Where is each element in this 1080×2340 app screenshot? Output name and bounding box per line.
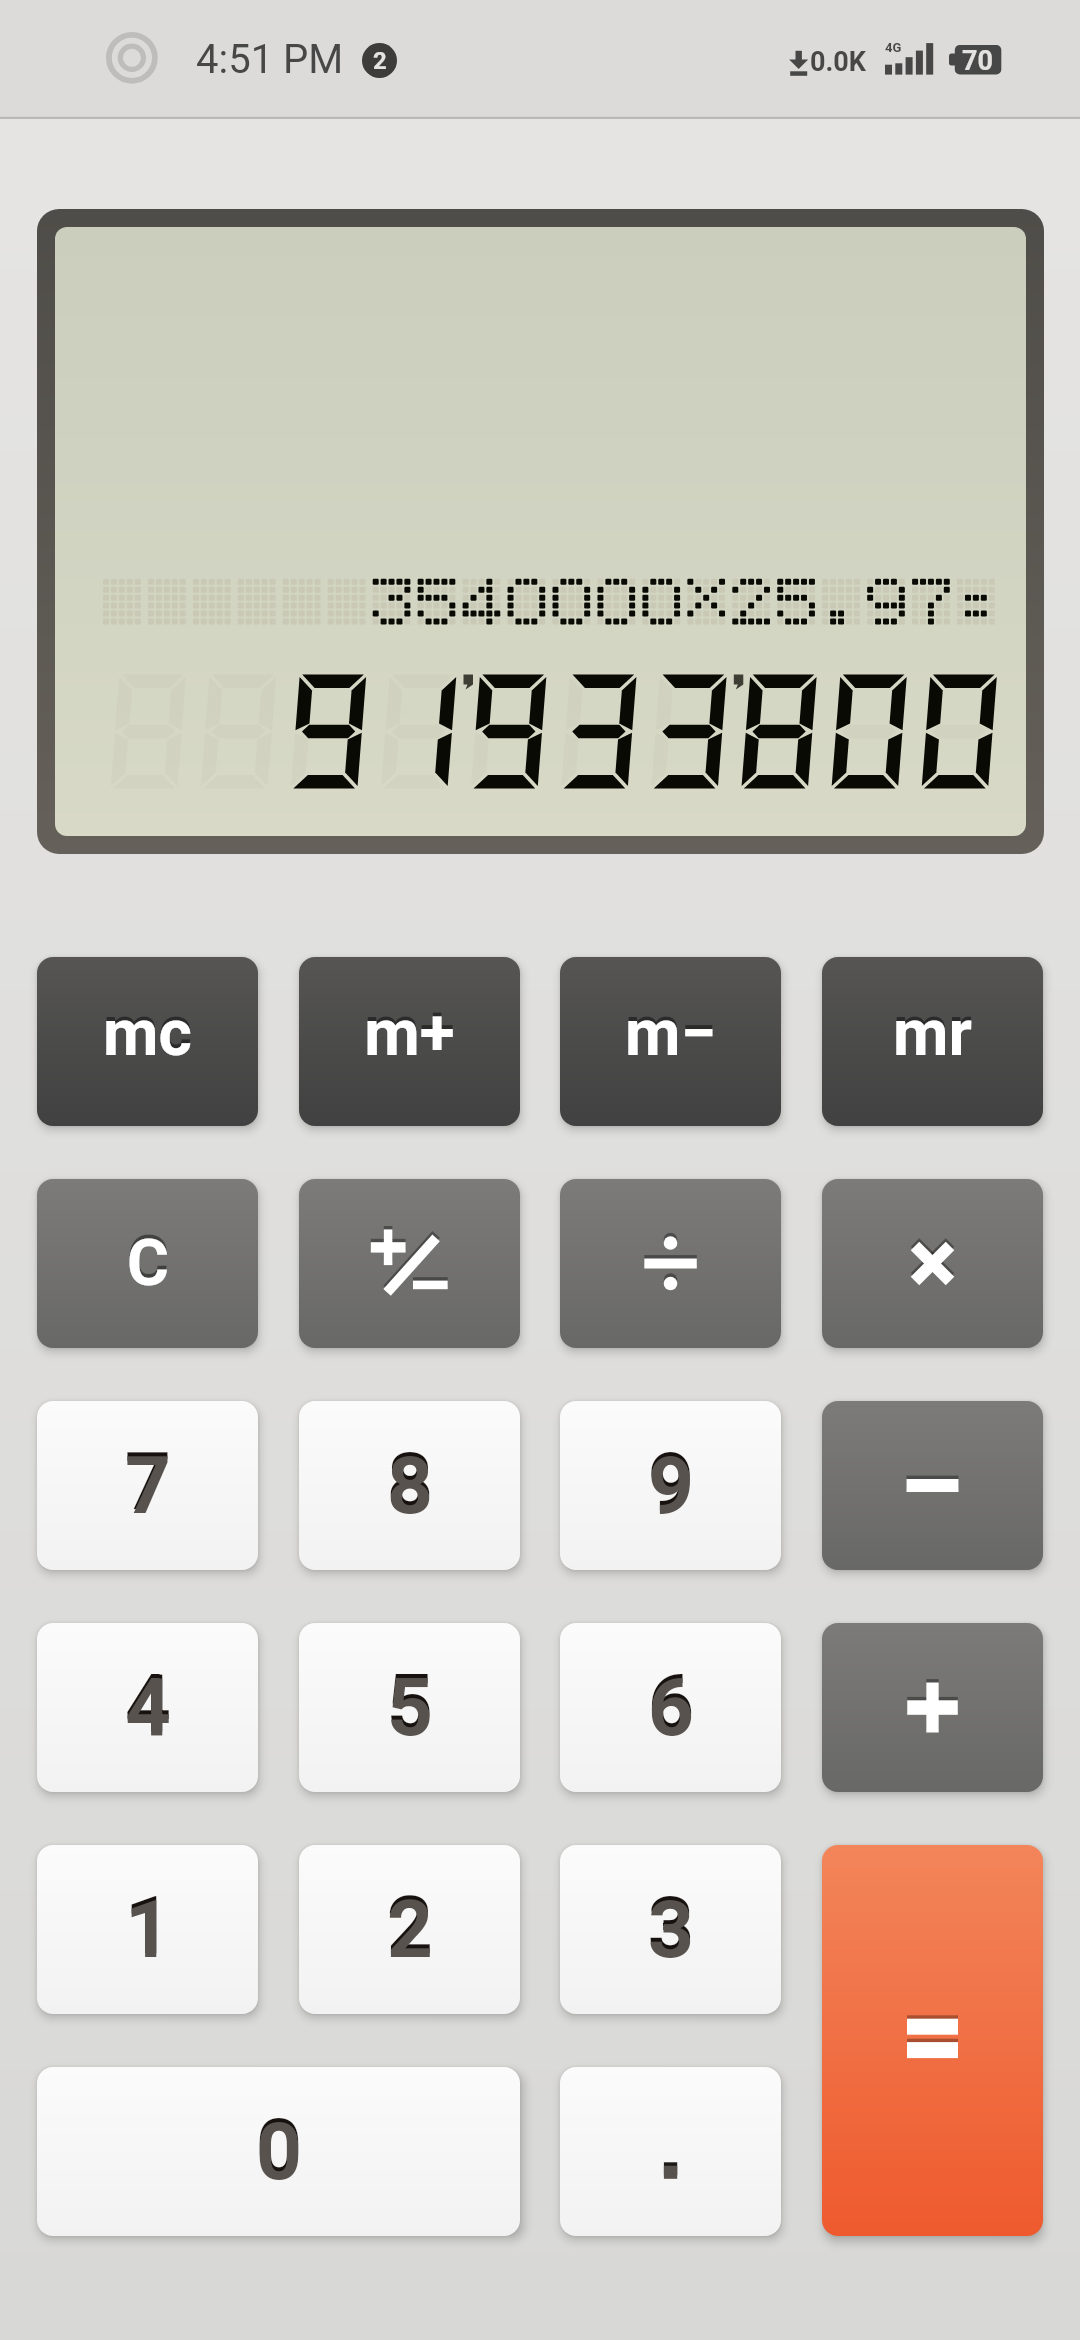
- staticText: 9: [648, 1435, 694, 1529]
- staticText: 2: [373, 47, 387, 75]
- staticText: 0: [256, 2105, 302, 2199]
- staticText: mr: [893, 992, 972, 1067]
- staticText: 0.0K: [810, 46, 866, 78]
- staticText: 8: [387, 1435, 433, 1529]
- button[interactable]: Equals: [822, 1845, 1043, 2236]
- staticText: 4G: [885, 40, 902, 55]
- staticText: 1: [125, 1883, 171, 1977]
- staticText: C: [127, 1222, 169, 1297]
- button[interactable]: mc: [37, 957, 258, 1126]
- staticText: mr: [893, 996, 972, 1071]
- button[interactable]: 7: [37, 1401, 258, 1570]
- button[interactable]: Plus minus: [299, 1179, 520, 1348]
- staticText: 7: [125, 1435, 171, 1529]
- staticText: 4:51 PM: [196, 36, 344, 83]
- staticText: m−: [625, 992, 716, 1067]
- staticText: 70: [962, 45, 993, 77]
- button[interactable]: mr: [822, 957, 1043, 1126]
- staticText: 9: [648, 1439, 694, 1533]
- button[interactable]: 3: [560, 1845, 781, 2014]
- button[interactable]: 8: [299, 1401, 520, 1570]
- staticText: 0: [256, 2101, 302, 2195]
- staticText: 3: [648, 1879, 694, 1973]
- button[interactable]: 9: [560, 1401, 781, 1570]
- button[interactable]: m−: [560, 957, 781, 1126]
- staticText: m−: [625, 996, 716, 1071]
- staticText: 2: [387, 1879, 433, 1973]
- staticText: m+: [364, 996, 455, 1071]
- button[interactable]: Minus: [822, 1401, 1043, 1570]
- button[interactable]: 6: [560, 1623, 781, 1792]
- staticText: 4: [125, 1661, 171, 1755]
- button[interactable]: 4: [37, 1623, 258, 1792]
- staticText: 5: [387, 1661, 433, 1755]
- button[interactable]: 1: [37, 1845, 258, 2014]
- button[interactable]: Divide: [560, 1179, 781, 1348]
- button[interactable]: Plus: [822, 1623, 1043, 1792]
- staticText: m+: [364, 992, 455, 1067]
- staticText: 4: [125, 1657, 171, 1751]
- staticText: mc: [103, 996, 192, 1071]
- button[interactable]: 5: [299, 1623, 520, 1792]
- staticText: 6: [648, 1657, 694, 1751]
- staticText: 2: [387, 1883, 433, 1977]
- staticText: 8: [387, 1439, 433, 1533]
- button[interactable]: C: [37, 1179, 258, 1348]
- staticText: 3: [648, 1883, 694, 1977]
- staticText: 5: [387, 1657, 433, 1751]
- staticText: 1: [125, 1879, 171, 1973]
- staticText: 6: [648, 1661, 694, 1755]
- button[interactable]: 2: [299, 1845, 520, 2014]
- staticText: C: [127, 1226, 169, 1301]
- button[interactable]: Multiply: [822, 1179, 1043, 1348]
- button[interactable]: 0: [37, 2067, 520, 2236]
- staticText: mc: [103, 992, 192, 1067]
- button[interactable]: m+: [299, 957, 520, 1126]
- button[interactable]: Decimal point: [560, 2067, 781, 2236]
- staticText: 7: [125, 1439, 171, 1533]
